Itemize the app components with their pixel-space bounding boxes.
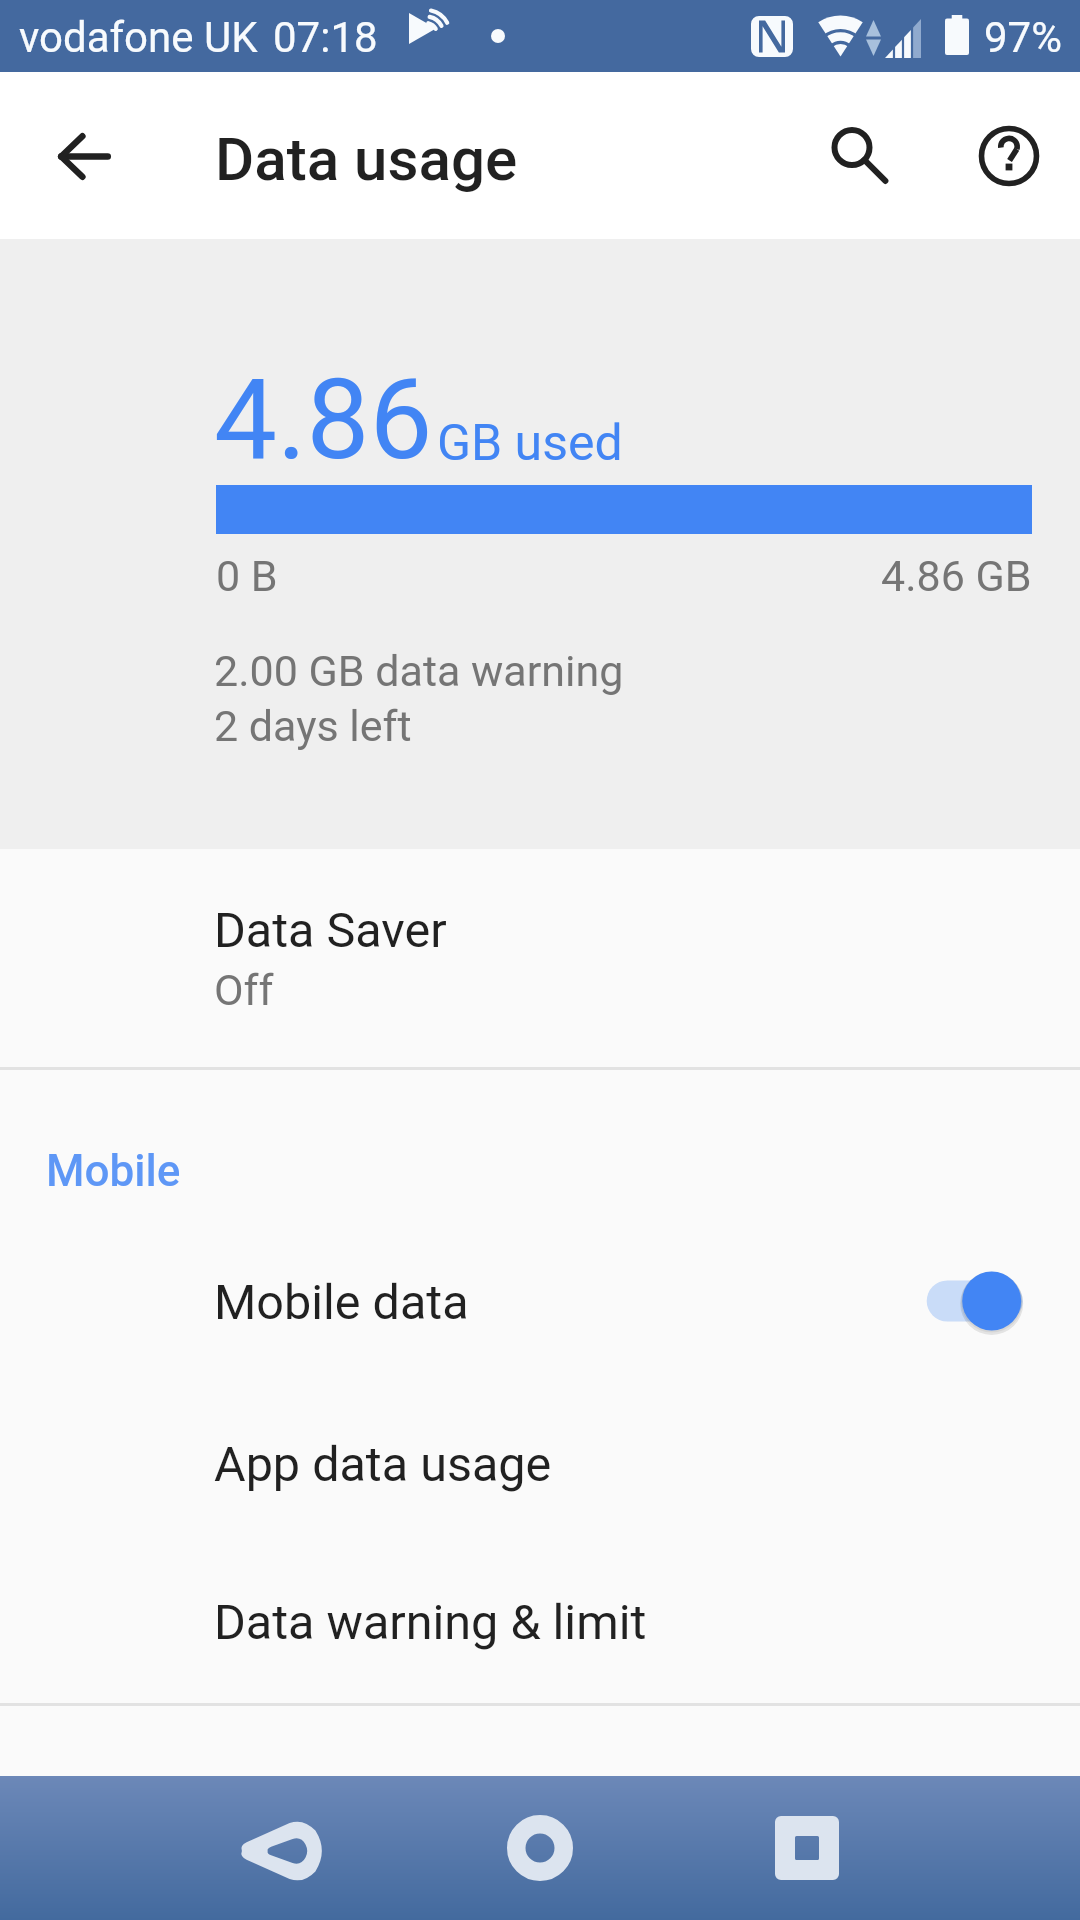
staticText: Data warning & limit — [214, 1594, 647, 1651]
staticText: Data Saver — [214, 902, 447, 959]
button[interactable]: Help — [954, 101, 1064, 211]
staticText: Mobile — [46, 1145, 181, 1197]
staticText: vodafone UK — [19, 13, 258, 62]
staticText: 97% — [984, 13, 1062, 62]
button[interactable]: Back — [213, 1783, 349, 1919]
button[interactable]: Search — [803, 101, 913, 211]
button[interactable]: Back — [29, 101, 139, 211]
button[interactable]: Data Saver — [0, 849, 1080, 1067]
staticText: Data usage — [215, 124, 518, 194]
staticText: 07:18 — [273, 13, 378, 62]
staticText: GB used — [437, 414, 623, 473]
staticText: 2 days left — [214, 701, 412, 751]
button[interactable]: Mobile data on — [900, 1261, 1060, 1365]
staticText: App data usage — [214, 1436, 552, 1493]
staticText: Off — [214, 965, 274, 1015]
button[interactable]: Mobile data — [0, 1233, 1080, 1393]
staticText: Mobile data — [214, 1274, 469, 1331]
staticText: 4.86 GB — [881, 551, 1032, 601]
staticText: 4.86 — [214, 354, 433, 485]
staticText: 0 B — [216, 551, 278, 601]
button[interactable]: Home — [472, 1780, 608, 1916]
button[interactable]: App data usage — [0, 1395, 1080, 1553]
button[interactable]: Recent apps — [739, 1780, 875, 1916]
button[interactable]: Data warning & limit — [0, 1553, 1080, 1711]
staticText: 2.00 GB data warning — [214, 646, 624, 696]
